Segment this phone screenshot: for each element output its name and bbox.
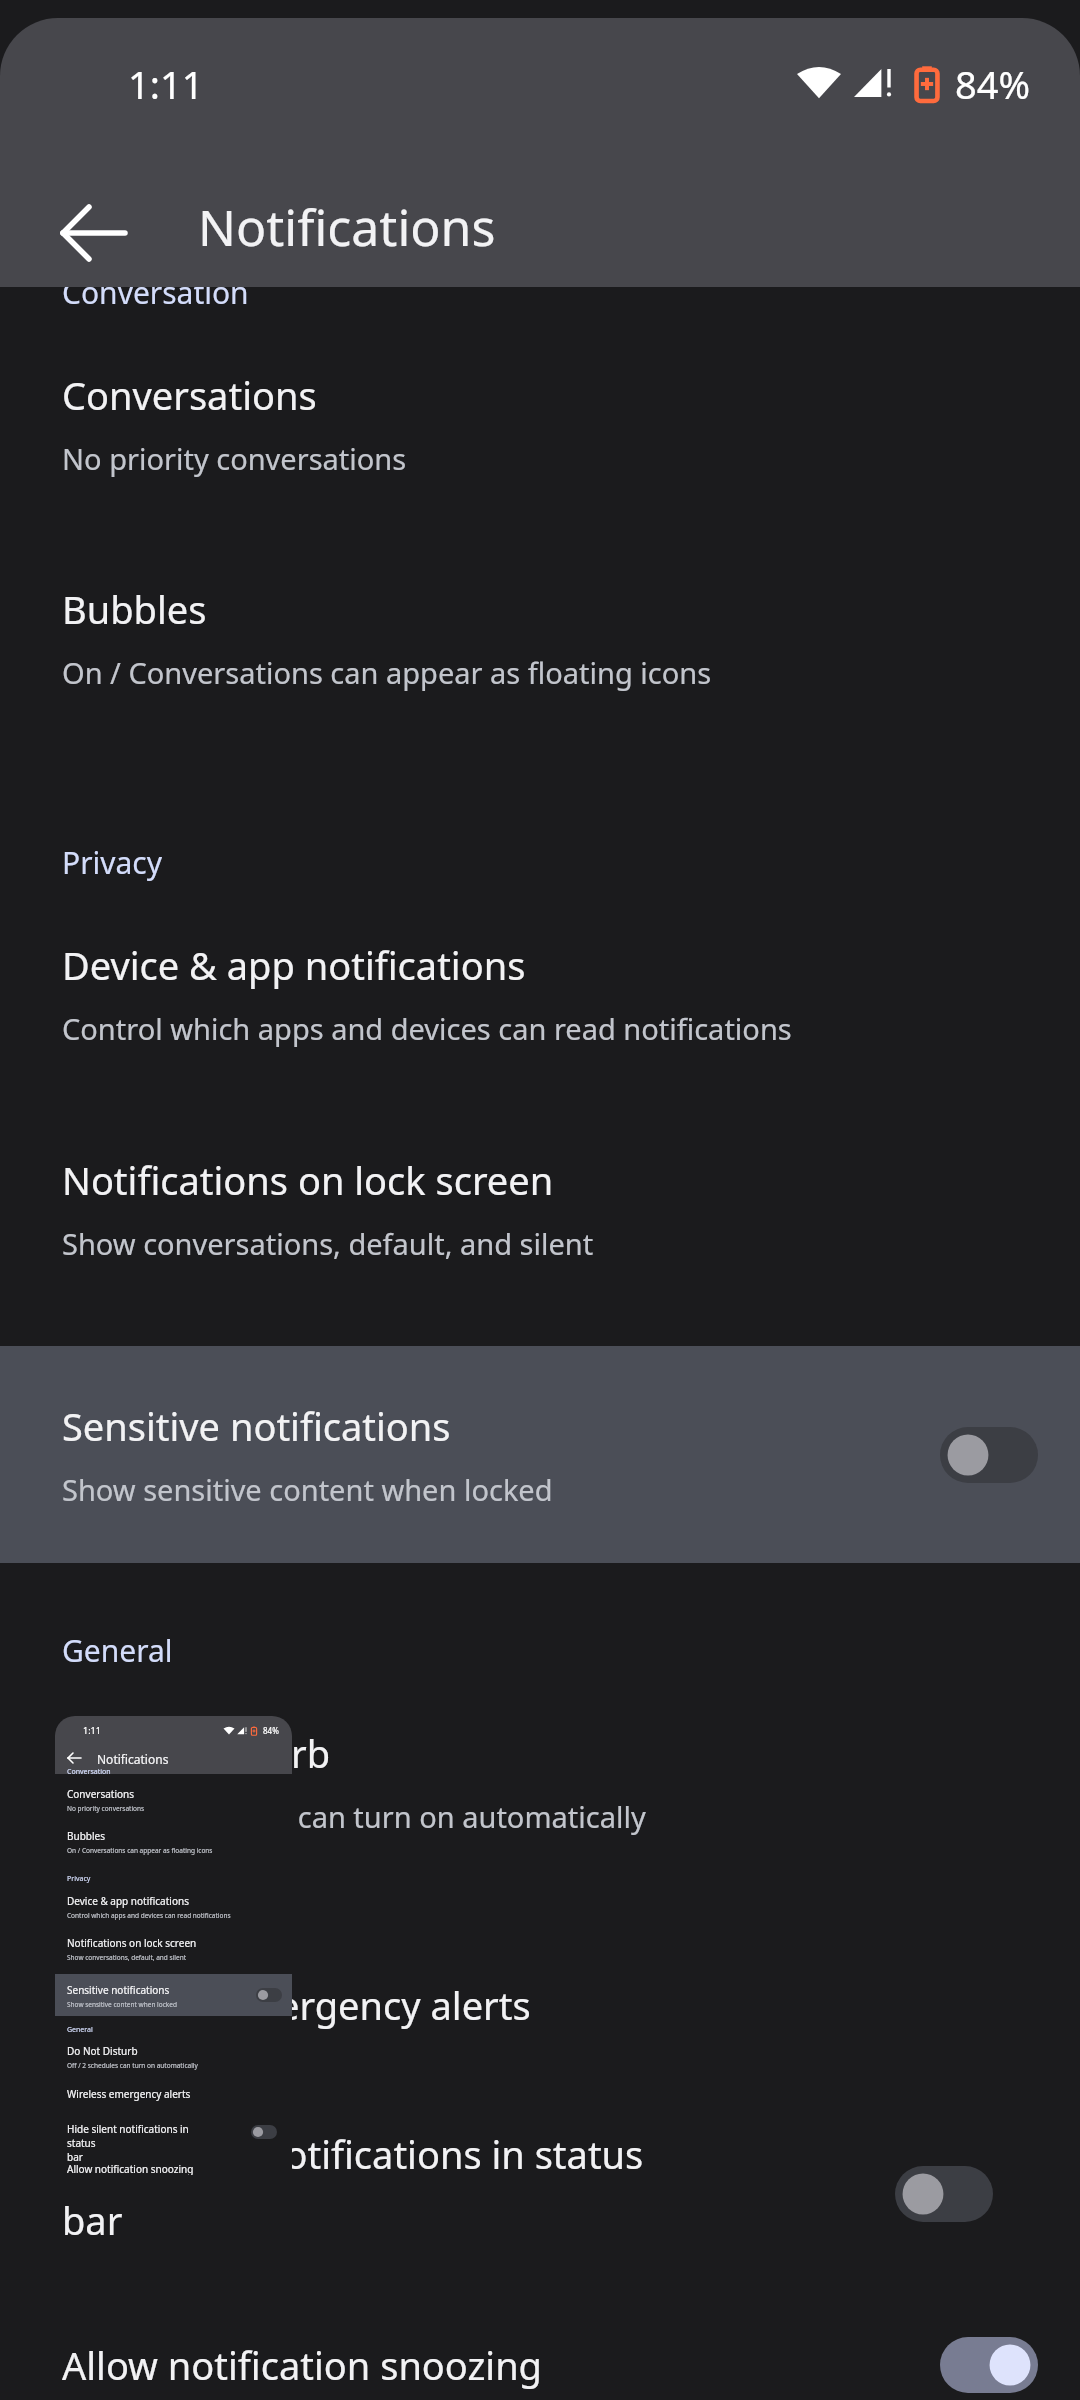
staticText: Do Not Disturb — [67, 2044, 138, 2058]
staticText: Bubbles — [67, 1829, 105, 1843]
staticText: Conversations — [67, 1787, 135, 1801]
staticText: Control which apps and devices can read … — [67, 1911, 231, 1920]
staticText: General — [62, 1630, 173, 1671]
staticText: bar — [67, 2150, 83, 2164]
staticText: Notifications on lock screen — [67, 1936, 197, 1950]
staticText: Notifications — [198, 193, 496, 261]
staticText: Wireless emergency alerts — [67, 2087, 191, 2101]
staticText: Off / 2 schedules can turn on automatica… — [62, 1797, 646, 1836]
staticText: General — [67, 2025, 93, 2035]
staticText: On / Conversations can appear as floatin… — [62, 653, 712, 692]
staticText: No priority conversations — [67, 1804, 145, 1813]
button[interactable]: Sensitive notifications — [0, 1346, 1080, 1563]
staticText: Do Not Disturb — [62, 1727, 331, 1779]
staticText: Sensitive notifications — [67, 1983, 170, 1997]
staticText: Allow notification snoozing — [67, 2162, 194, 2175]
staticText: Sensitive notifications — [62, 1400, 451, 1452]
staticText: Bubbles — [62, 583, 207, 635]
staticText: Hide silent notifications in status — [67, 2122, 217, 2150]
staticText: Notifications — [97, 1751, 169, 1767]
button[interactable]: Allow notification snoozing — [0, 2310, 1080, 2400]
staticText: bar — [62, 2194, 123, 2246]
button[interactable]: Conversations — [0, 348, 1080, 498]
staticText: Conversation — [62, 272, 249, 313]
button[interactable]: Screenshot preview — [55, 1712, 292, 2175]
button[interactable]: Wireless emergency alerts — [0, 1950, 1080, 2060]
button[interactable]: Notifications on lock screen — [0, 1133, 1080, 1283]
staticText: Wireless emergency alerts — [62, 1979, 531, 2031]
staticText: 84% — [955, 58, 1031, 110]
staticText: 84% — [263, 1725, 279, 1736]
staticText: Show sensitive content when locked — [62, 1470, 553, 1509]
staticText: Off / 2 schedules can turn on automatica… — [67, 2061, 198, 2070]
button[interactable]: Do Not Disturb — [0, 1706, 1080, 1856]
button[interactable]: Bubbles — [0, 562, 1080, 712]
staticText: Show sensitive content when locked — [67, 2000, 177, 2009]
staticText: Device & app notifications — [67, 1894, 189, 1908]
button[interactable]: Back — [45, 183, 145, 283]
staticText: Hide silent notifications in status — [62, 2128, 644, 2180]
staticText: Privacy — [62, 842, 163, 883]
button[interactable]: Hide silent notifications in status — [0, 2090, 1080, 2330]
staticText: No priority conversations — [62, 439, 407, 478]
button[interactable]: Device & app notifications — [0, 918, 1080, 1068]
staticText: Privacy — [67, 1874, 91, 1884]
staticText: Device & app notifications — [62, 939, 526, 991]
staticText: Allow notification snoozing — [62, 2339, 542, 2391]
staticText: 1:11 — [128, 58, 204, 110]
staticText: Show conversations, default, and silent — [67, 1953, 187, 1962]
staticText: Notifications on lock screen — [62, 1154, 554, 1206]
staticText: Show conversations, default, and silent — [62, 1224, 594, 1263]
staticText: Conversations — [62, 369, 317, 421]
staticText: Control which apps and devices can read … — [62, 1009, 792, 1048]
staticText: On / Conversations can appear as floatin… — [67, 1846, 213, 1855]
staticText: Conversation — [67, 1767, 111, 1777]
staticText: 1:11 — [83, 1724, 101, 1736]
